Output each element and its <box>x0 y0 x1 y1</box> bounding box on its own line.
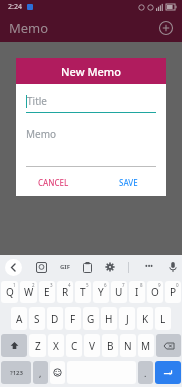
staticText: U <box>115 285 123 299</box>
staticText: F <box>70 312 76 326</box>
button[interactable]: Symbols <box>1 361 31 384</box>
staticText: S <box>34 312 40 326</box>
staticText: R <box>62 285 69 299</box>
staticText: N <box>124 339 132 353</box>
button[interactable]: Comma <box>33 361 48 384</box>
staticText: ?123 <box>10 369 23 377</box>
staticText: C <box>71 339 78 353</box>
button[interactable]: G <box>83 307 99 330</box>
staticText: . <box>144 367 147 379</box>
button[interactable]: A <box>11 307 27 330</box>
button[interactable]: J <box>119 307 135 330</box>
button[interactable]: U <box>111 281 127 303</box>
staticText: 6 <box>104 282 107 288</box>
staticText: 7 <box>122 282 125 288</box>
staticText: GIF <box>60 263 70 271</box>
button[interactable]: P <box>165 281 181 303</box>
button[interactable]: X <box>48 334 64 357</box>
button[interactable]: Stickers <box>36 262 47 273</box>
button[interactable]: Voice input <box>169 261 177 273</box>
staticText: Memo <box>26 127 57 141</box>
staticText: , <box>39 367 42 379</box>
staticText: 4 <box>68 282 71 288</box>
button[interactable]: F <box>65 307 81 330</box>
button[interactable]: CANCEL <box>16 177 91 188</box>
button[interactable]: Period <box>138 361 153 384</box>
staticText: 2 <box>32 282 35 288</box>
staticText: D <box>51 312 59 326</box>
staticText: H <box>105 312 113 326</box>
staticText: G <box>87 312 95 326</box>
staticText: Z <box>35 339 41 353</box>
button[interactable]: Add memo <box>158 20 174 36</box>
staticText: K <box>142 312 149 326</box>
staticText: O <box>151 285 159 299</box>
button[interactable]: Back <box>5 259 22 276</box>
button[interactable]: Y <box>93 281 109 303</box>
button[interactable]: Shift <box>1 334 27 357</box>
staticText: 1 <box>13 282 16 288</box>
button[interactable]: Backspace <box>156 334 181 357</box>
button[interactable]: N <box>120 334 136 357</box>
button[interactable]: M <box>138 334 154 357</box>
button[interactable]: More options <box>142 260 156 274</box>
staticText: SAVE <box>119 177 138 188</box>
staticText: Title <box>27 94 47 108</box>
button[interactable]: S <box>29 307 45 330</box>
button[interactable]: SAVE <box>91 177 166 188</box>
staticText: W <box>24 285 34 299</box>
button[interactable]: Keyboard settings <box>105 262 115 272</box>
button[interactable]: W <box>20 281 37 303</box>
button[interactable]: GIF <box>60 263 70 271</box>
button[interactable]: V <box>84 334 100 357</box>
button[interactable]: H <box>101 307 117 330</box>
staticText: X <box>53 339 59 353</box>
button[interactable]: R <box>57 281 73 303</box>
button[interactable]: B <box>102 334 118 357</box>
staticText: P <box>170 285 177 299</box>
button[interactable]: T <box>75 281 91 303</box>
staticText: T <box>80 285 86 299</box>
staticText: Memo <box>9 19 49 37</box>
staticText: CANCEL <box>38 177 69 188</box>
staticText: V <box>89 339 95 353</box>
staticText: Q <box>6 285 14 299</box>
staticText: 9 <box>158 282 161 288</box>
staticText: 8 <box>140 282 143 288</box>
staticText: J <box>126 312 129 326</box>
staticText: 0 <box>176 282 179 288</box>
staticText: L <box>160 312 166 326</box>
button[interactable]: Q <box>1 281 18 303</box>
button[interactable]: E <box>39 281 55 303</box>
staticText: ••• <box>145 262 153 272</box>
staticText: New Memo <box>61 64 121 79</box>
button[interactable]: I <box>129 281 145 303</box>
button[interactable]: C <box>66 334 82 357</box>
button[interactable]: Z <box>29 334 46 357</box>
staticText: Y <box>98 285 104 299</box>
staticText: 3 <box>50 282 53 288</box>
staticText: 5 <box>86 282 89 288</box>
staticText: A <box>16 312 23 326</box>
staticText: E <box>44 285 50 299</box>
staticText: M <box>141 339 151 353</box>
staticText: 2:24 <box>8 2 22 12</box>
button[interactable]: Clipboard <box>83 262 92 273</box>
button[interactable]: Emoji <box>50 361 65 384</box>
staticText: B <box>107 339 114 353</box>
button[interactable]: K <box>137 307 153 330</box>
staticText: I <box>135 285 139 299</box>
button[interactable]: Enter <box>155 361 181 384</box>
button[interactable]: L <box>155 307 171 330</box>
button[interactable]: O <box>147 281 163 303</box>
button[interactable]: D <box>47 307 63 330</box>
